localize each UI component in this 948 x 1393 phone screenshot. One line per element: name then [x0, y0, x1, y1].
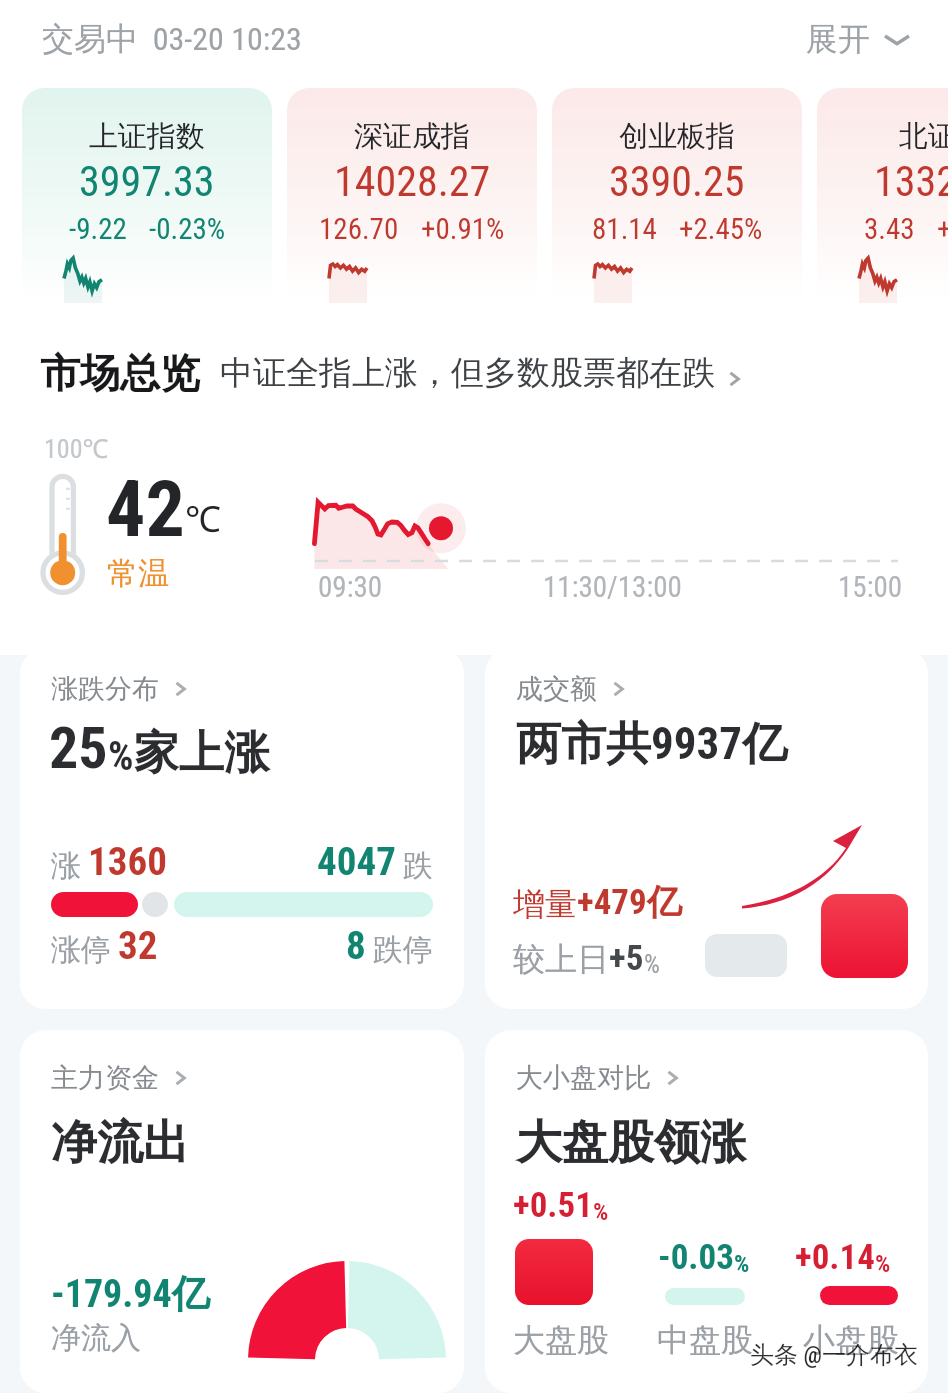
staticText: 100℃	[44, 430, 109, 465]
staticText: 大盘股领涨	[516, 1114, 746, 1172]
staticText: +479亿	[577, 880, 682, 924]
staticText: 家上涨	[134, 725, 269, 782]
staticText: 主力资金	[51, 1061, 159, 1095]
staticText: 创业板指	[619, 118, 735, 155]
staticText: 增量	[513, 884, 577, 924]
button[interactable]: 深证成指	[287, 88, 537, 303]
staticText: 小盘股	[803, 1320, 899, 1360]
staticText: 8	[346, 923, 366, 969]
staticText: -0.23%	[149, 212, 226, 246]
staticText: 成交额	[516, 672, 597, 706]
staticText: 深证成指	[354, 118, 470, 155]
staticText: 交易中 03-20 10:23	[42, 19, 302, 59]
staticText: -179.94亿	[51, 1270, 210, 1318]
staticText: 15:00	[838, 570, 903, 604]
staticText: 中盘股	[657, 1320, 753, 1360]
staticText: 11:30/13:00	[543, 570, 682, 604]
staticText: 市场总览	[40, 348, 200, 398]
staticText: 42	[106, 464, 185, 555]
staticText: 中证全指上涨，但多数股票都在跌	[220, 352, 715, 394]
staticText: +0.14	[795, 1237, 875, 1278]
staticText: 1360	[88, 839, 167, 885]
staticText: +0.51	[513, 1185, 593, 1226]
staticText: 两市共9937亿	[516, 716, 787, 773]
button[interactable]: 主力资金	[20, 1030, 464, 1393]
staticText: 大盘股	[513, 1320, 609, 1360]
staticText: +0.91%	[421, 212, 505, 246]
staticText: ℃	[185, 494, 221, 543]
button[interactable]: 上证指数	[22, 88, 272, 303]
staticText: 净流出	[51, 1114, 189, 1172]
staticText: 25	[49, 714, 108, 782]
staticText: 32	[118, 923, 158, 969]
staticText: %	[593, 1198, 609, 1226]
button[interactable]: 市场总览	[40, 348, 948, 398]
staticText: -9.22	[69, 212, 127, 246]
staticText: 1332.60	[874, 157, 948, 206]
staticText: 126.70	[319, 212, 399, 246]
staticText: 头条 @一介布衣	[750, 1340, 918, 1370]
staticText: 3997.33	[79, 157, 215, 206]
other: Expand	[882, 24, 912, 54]
staticText: %	[108, 733, 134, 780]
staticText: 涨跌分布	[51, 672, 159, 706]
staticText: 09:30	[318, 570, 383, 604]
button[interactable]: 大小盘对比	[485, 1030, 928, 1393]
button[interactable]: 成交额	[485, 648, 928, 1009]
staticText: +5	[609, 938, 644, 979]
staticText: 净流入	[51, 1319, 141, 1357]
staticText: 北证50	[899, 118, 948, 155]
staticText: 大小盘对比	[516, 1061, 651, 1095]
staticText: 上证指数	[89, 118, 205, 155]
staticText: 14028.27	[334, 157, 491, 206]
staticText: 跌停	[366, 931, 433, 969]
button[interactable]: 展开	[806, 19, 912, 59]
staticText: 3390.25	[609, 157, 745, 206]
staticText: %	[644, 950, 660, 979]
staticText: +2.45%	[679, 212, 763, 246]
button[interactable]: 创业板指	[552, 88, 802, 303]
button[interactable]: 北证50	[817, 88, 948, 303]
staticText: +0.26%	[937, 212, 948, 246]
staticText: 跌	[396, 847, 433, 885]
staticText: 涨停	[51, 931, 118, 969]
staticText: 3.43	[864, 212, 915, 246]
staticText: 展开	[806, 19, 870, 59]
button[interactable]: 涨跌分布	[20, 648, 464, 1009]
staticText: 较上日	[513, 939, 609, 979]
staticText: 4047	[317, 839, 396, 885]
staticText: %	[875, 1250, 891, 1278]
staticText: 常温	[107, 554, 169, 593]
staticText: %	[734, 1250, 750, 1278]
staticText: 涨	[51, 847, 88, 885]
staticText: 81.14	[592, 212, 657, 246]
staticText: -0.03	[658, 1237, 734, 1278]
